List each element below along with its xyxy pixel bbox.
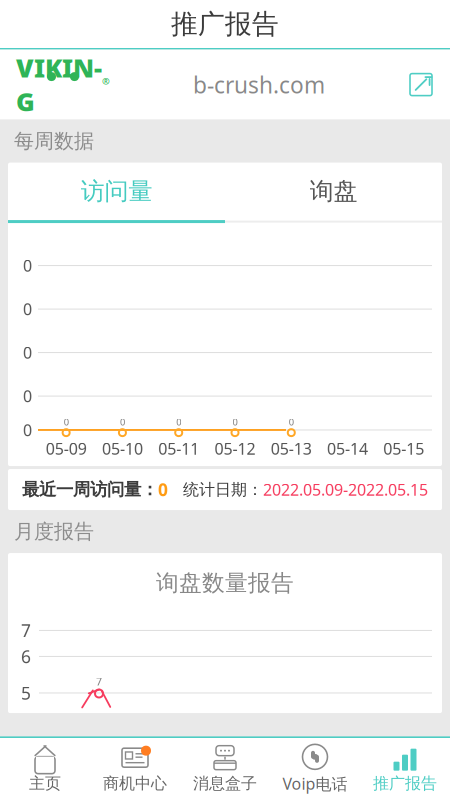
staticText: 访问量: [80, 177, 152, 206]
button[interactable]: Voip电话: [270, 738, 360, 800]
button[interactable]: Open site: [406, 70, 436, 100]
staticText: 主页: [29, 774, 61, 793]
staticText: 0: [289, 416, 294, 428]
staticText: 0: [120, 416, 125, 428]
staticText: 05-10: [102, 438, 143, 459]
button[interactable]: 访问量: [8, 163, 225, 220]
staticText: 商机中心: [103, 774, 167, 793]
staticText: VIKING: [16, 51, 102, 118]
staticText: 05-13: [271, 438, 312, 459]
staticText: 0: [23, 385, 32, 407]
staticText: 0: [158, 478, 168, 501]
staticText: 每周数据: [14, 129, 94, 153]
button[interactable]: 询盘: [225, 163, 442, 220]
staticText: 05-12: [214, 438, 255, 459]
button[interactable]: 消息盒子: [180, 739, 270, 799]
staticText: 0: [64, 416, 69, 428]
staticText: 0: [23, 419, 32, 440]
staticText: 0: [232, 416, 237, 428]
staticText: 0: [23, 342, 32, 363]
staticText: 7: [21, 619, 31, 642]
button[interactable]: 推广报告: [360, 739, 450, 799]
staticText: 6: [21, 645, 31, 668]
staticText: 统计日期：: [183, 480, 263, 499]
staticText: 05-11: [158, 438, 199, 459]
staticText: 推广报告: [171, 8, 279, 40]
staticText: b-crush.com: [193, 69, 325, 100]
staticText: 推广报告: [373, 774, 437, 793]
staticText: 月度报告: [14, 519, 94, 544]
staticText: 5: [21, 681, 31, 704]
staticText: 询盘: [309, 177, 357, 206]
staticText: 询盘数量报告: [156, 569, 294, 597]
staticText: ®: [102, 75, 110, 87]
staticText: 0: [176, 416, 181, 428]
staticText: 0: [23, 298, 32, 320]
staticText: 最近一周访问量：: [22, 479, 158, 500]
staticText: Voip电话: [282, 773, 347, 794]
button[interactable]: 主页: [0, 739, 90, 799]
staticText: 05-09: [46, 438, 87, 459]
staticText: 05-14: [327, 438, 368, 459]
staticText: 2022.05.09-2022.05.15: [263, 479, 428, 500]
staticText: 消息盒子: [193, 774, 257, 793]
staticText: 7: [96, 674, 102, 689]
button[interactable]: 商机中心: [90, 739, 180, 799]
staticText: 05-15: [383, 438, 424, 459]
staticText: 0: [23, 255, 32, 276]
